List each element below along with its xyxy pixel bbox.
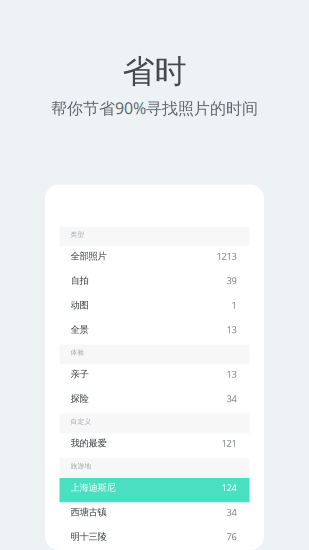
staticText: 上海迪斯尼: [70, 482, 115, 493]
button[interactable]: 明十三陵: [59, 527, 249, 550]
staticText: 帮你节省90%寻找照片的时间: [51, 97, 258, 118]
button[interactable]: 全部照片: [59, 246, 249, 271]
staticText: 76: [226, 531, 236, 543]
staticText: 亲子: [70, 368, 88, 380]
staticText: 自定义: [70, 417, 91, 426]
staticText: 我的最爱: [70, 437, 106, 449]
staticText: 类型: [70, 230, 84, 239]
staticText: 西塘古镇: [70, 506, 106, 518]
staticText: 全景: [70, 324, 88, 335]
button[interactable]: 自拍: [59, 271, 249, 295]
staticText: 全部照片: [70, 250, 106, 262]
staticText: 体验: [70, 348, 84, 357]
staticText: 34: [226, 506, 236, 518]
button[interactable]: 全景: [59, 320, 249, 344]
staticText: 121: [221, 437, 236, 449]
staticText: 1213: [216, 250, 236, 262]
button[interactable]: 动图: [59, 295, 249, 320]
button[interactable]: 西塘古镇: [59, 502, 249, 527]
staticText: 34: [226, 393, 236, 405]
button[interactable]: 上海迪斯尼: [59, 478, 249, 502]
button[interactable]: 我的最爱: [59, 433, 249, 458]
staticText: 13: [226, 368, 236, 380]
staticText: 探险: [70, 393, 88, 404]
staticText: 动图: [70, 299, 88, 311]
staticText: 13: [226, 324, 236, 336]
staticText: 明十三陵: [70, 531, 106, 542]
staticText: 省时: [122, 52, 186, 91]
staticText: 自拍: [70, 275, 88, 286]
staticText: 1: [231, 299, 236, 311]
button[interactable]: 探险: [59, 389, 249, 413]
staticText: 124: [221, 482, 236, 494]
button[interactable]: 亲子: [59, 364, 249, 389]
staticText: 旅游地: [70, 462, 91, 470]
staticText: 39: [226, 275, 236, 287]
